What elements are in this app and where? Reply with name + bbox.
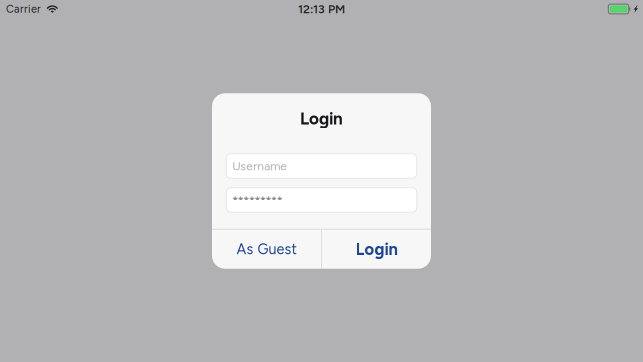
- staticText: *********: [232, 193, 283, 207]
- staticText: 12:13 PM: [298, 2, 345, 16]
- button[interactable]: Login: [322, 230, 431, 269]
- staticText: Login: [300, 108, 343, 129]
- button[interactable]: As Guest: [212, 230, 321, 269]
- staticText: Carrier: [6, 2, 41, 15]
- button[interactable]: Username: [226, 154, 417, 178]
- button[interactable]: Password: [226, 188, 417, 212]
- staticText: Username: [232, 159, 287, 173]
- staticText: Login: [355, 239, 397, 259]
- staticText: As Guest: [236, 241, 296, 258]
